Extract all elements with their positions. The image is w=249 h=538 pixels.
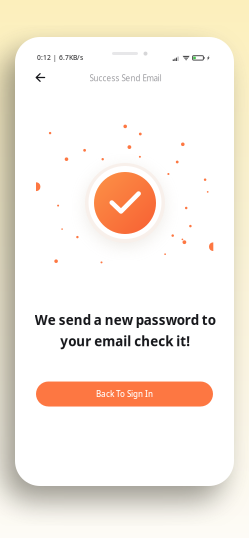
button[interactable]: Back bbox=[15, 37, 234, 61]
staticText: Success Send Email bbox=[89, 73, 161, 83]
staticText: your email check it! bbox=[60, 332, 190, 350]
button[interactable]: Back To Sign In bbox=[36, 381, 213, 406]
staticText: We send a new password to bbox=[34, 311, 215, 329]
staticText: 0:12 | 6.7KB/s bbox=[37, 53, 83, 62]
staticText: Back To Sign In bbox=[96, 389, 153, 399]
